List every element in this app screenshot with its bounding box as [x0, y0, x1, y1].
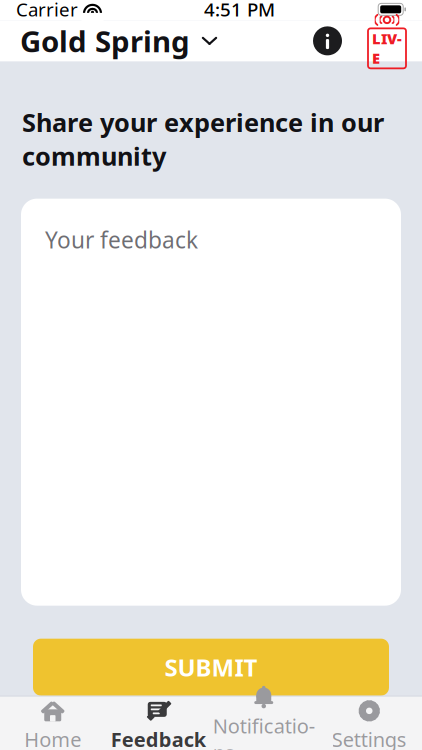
- staticText: SUBMIT: [164, 651, 257, 683]
- staticText: Gold Spring: [20, 21, 190, 60]
- staticText: Settings: [332, 726, 407, 750]
- button[interactable]: SUBMIT: [33, 639, 389, 696]
- staticText: Feedback: [111, 726, 206, 750]
- button[interactable]: Gold Spring: [20, 15, 219, 66]
- button[interactable]: Your feedback text field: [21, 199, 401, 606]
- button[interactable]: Information: [307, 22, 348, 59]
- button[interactable]: Notifications: [211, 679, 316, 750]
- staticText: 4:51 PM: [204, 0, 275, 22]
- staticText: Your feedback: [45, 225, 198, 255]
- button[interactable]: Feedback: [105, 692, 211, 750]
- button[interactable]: Home: [0, 692, 105, 750]
- staticText: Share your experience in our community: [22, 105, 384, 173]
- button[interactable]: Settings: [316, 692, 422, 750]
- staticText: Home: [24, 726, 81, 750]
- staticText: LIVE: [372, 29, 402, 68]
- staticText: Carrier: [16, 0, 78, 22]
- staticText: Notifications: [213, 713, 315, 750]
- button[interactable]: Live: [348, 13, 408, 68]
